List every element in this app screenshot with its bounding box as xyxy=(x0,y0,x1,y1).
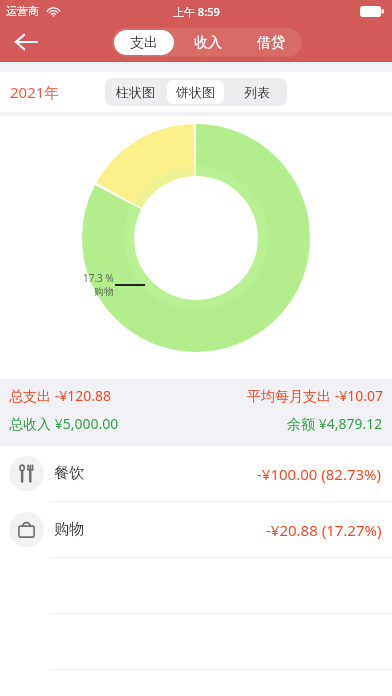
button[interactable]: 购物 xyxy=(0,502,392,557)
staticText: -¥20.88 (17.27%) xyxy=(266,520,382,540)
staticText: 总支出 -¥120.88 xyxy=(9,386,111,405)
staticText: 饼状图 xyxy=(176,84,215,100)
staticText: 餐饮 xyxy=(286,464,306,477)
staticText: 列表 xyxy=(244,84,270,100)
button[interactable]: 列表 xyxy=(228,80,285,104)
staticText: 2021年 xyxy=(10,82,60,102)
staticText: 17.3 % xyxy=(83,271,114,285)
staticText: 收入 xyxy=(194,34,222,52)
button[interactable]: 饼状图 xyxy=(167,80,224,104)
button[interactable]: 支出 xyxy=(114,30,174,55)
button[interactable]: 餐饮 xyxy=(0,446,392,501)
button[interactable]: 借贷 xyxy=(241,30,300,55)
button[interactable]: 收入 xyxy=(178,30,237,55)
staticText: 平均每月支出 -¥10.07 xyxy=(247,386,383,405)
staticText: 运营商 xyxy=(6,4,39,18)
staticText: 支出 xyxy=(130,34,158,52)
button[interactable]: Back xyxy=(6,22,46,62)
button[interactable]: 柱状图 xyxy=(107,80,163,104)
staticText: 余额 ¥4,879.12 xyxy=(287,414,383,433)
staticText: 餐饮 xyxy=(54,464,84,483)
staticText: 柱状图 xyxy=(116,84,155,100)
staticText: 购物 xyxy=(54,520,84,539)
staticText: 借贷 xyxy=(257,34,285,52)
staticText: 总收入 ¥5,000.00 xyxy=(9,414,119,433)
staticText: -¥100.00 (82.73%) xyxy=(257,464,382,484)
staticText: 购物 xyxy=(94,285,114,298)
staticText: 上午 8:59 xyxy=(173,4,220,19)
